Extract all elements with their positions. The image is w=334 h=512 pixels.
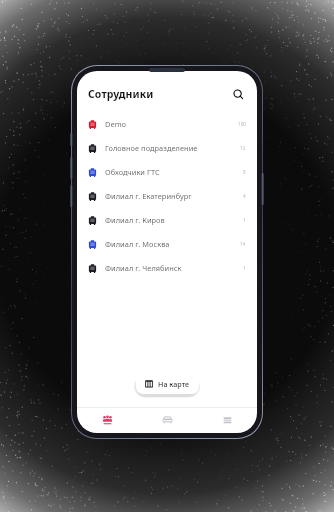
staticText: Сотрудники (88, 87, 154, 101)
staticText: Обходчики ГТС (105, 167, 239, 177)
button[interactable]: Search (229, 85, 247, 103)
staticText: 12 (240, 145, 246, 151)
staticText: 1 (243, 217, 246, 223)
staticText: 14 (240, 241, 246, 247)
staticText: Филиал г. Екатеринбург (105, 191, 239, 201)
staticText: Филиал г. Киров (105, 215, 239, 225)
button[interactable]: Обходчики ГТС (77, 160, 257, 184)
button[interactable]: На карте (136, 374, 199, 394)
button[interactable]: Головное подразделение (77, 136, 257, 160)
staticText: Филиал г. Москва (105, 239, 236, 249)
button[interactable]: Demo (77, 112, 257, 136)
button[interactable]: Menu (197, 408, 257, 430)
staticText: 100 (238, 121, 246, 127)
button[interactable]: Assets (137, 408, 197, 430)
button[interactable]: People (77, 408, 137, 430)
staticText: Филиал г. Челябинск (105, 263, 239, 273)
button[interactable]: Филиал г. Киров (77, 208, 257, 232)
button[interactable]: Филиал г. Челябинск (77, 256, 257, 280)
staticText: Demo (105, 119, 234, 129)
staticText: 4 (243, 193, 246, 199)
button[interactable]: Филиал г. Екатеринбург (77, 184, 257, 208)
staticText: На карте (158, 379, 190, 389)
staticText: 5 (243, 169, 246, 175)
button[interactable]: Филиал г. Москва (77, 232, 257, 256)
staticText: 1 (243, 265, 246, 271)
staticText: Головное подразделение (105, 143, 236, 153)
